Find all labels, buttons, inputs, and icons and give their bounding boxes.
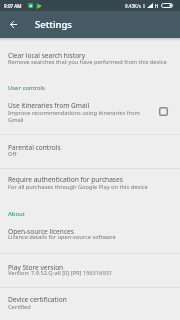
button[interactable]: Play Store version — [0, 253, 180, 287]
staticText: Parental controls — [8, 143, 61, 152]
button[interactable]: Open-source licences — [0, 222, 180, 253]
button[interactable]: Parental controls — [0, 134, 180, 168]
button[interactable]: Device certification — [0, 287, 180, 320]
staticText: Improve recommendations using itinerarie… — [8, 109, 145, 124]
button[interactable]: Back — [0, 11, 27, 38]
staticText: Require authentication for purchases — [8, 175, 123, 184]
staticText: Open-source licences — [8, 227, 74, 236]
button[interactable]: Clear local search history — [0, 41, 180, 134]
staticText: 9.43K/s — [125, 3, 141, 9]
staticText: H — [155, 3, 159, 9]
staticText: 9:07 AM — [4, 3, 22, 9]
button[interactable]: Require authentication for purchases — [0, 168, 180, 204]
staticText: For all purchases through Google Play on… — [8, 183, 148, 191]
button[interactable]: Use itineraries from Gmail — [155, 103, 171, 119]
staticText: User controls — [8, 84, 45, 92]
staticText: Certified — [8, 303, 31, 311]
staticText: Off — [8, 150, 17, 158]
staticText: Play Store version — [8, 263, 64, 272]
staticText: Device certification — [8, 295, 67, 304]
staticText: About — [8, 210, 25, 218]
staticText: Use itineraries from Gmail — [8, 101, 90, 110]
staticText: Clear local search history — [8, 51, 86, 60]
staticText: Remove searches that you have performed … — [8, 58, 167, 66]
staticText: Settings — [35, 18, 72, 31]
staticText: Licence details for open-source software — [8, 233, 116, 241]
staticText: Version: 7.9.52.Q-all [0] [PR] 156316931 — [8, 269, 113, 277]
